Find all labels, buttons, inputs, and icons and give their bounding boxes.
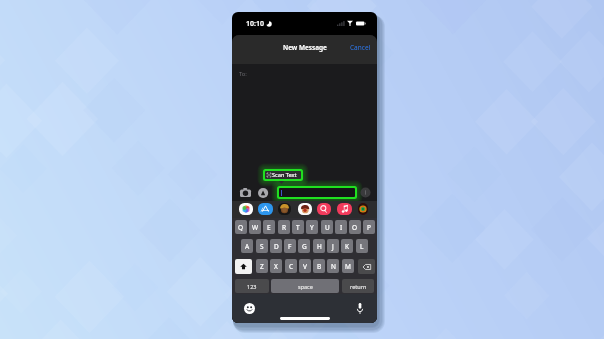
staticText: S <box>260 242 264 251</box>
button[interactable] <box>278 203 291 215</box>
staticText: N <box>331 262 336 271</box>
button[interactable]: Cancel <box>350 43 371 52</box>
button[interactable]: Z <box>256 259 268 273</box>
staticText: L <box>360 242 364 251</box>
button[interactable]: G <box>298 239 310 253</box>
staticText: P <box>367 223 371 232</box>
button[interactable]: C <box>285 259 297 273</box>
staticText: C <box>289 262 294 271</box>
button[interactable] <box>279 188 355 197</box>
button[interactable] <box>337 203 352 215</box>
staticText: To: <box>239 70 247 78</box>
staticText: A <box>245 242 250 251</box>
staticText: 10:10 <box>246 19 264 29</box>
staticText: 123 <box>247 283 257 290</box>
button[interactable]: U <box>321 220 333 234</box>
button[interactable]: O <box>349 220 361 234</box>
button[interactable]: Send <box>360 187 371 198</box>
button[interactable]: 123 <box>235 279 269 293</box>
button[interactable] <box>317 203 331 215</box>
button[interactable]: W <box>249 220 261 234</box>
button[interactable]: I <box>335 220 347 234</box>
staticText: D <box>274 242 279 251</box>
button[interactable]: M <box>342 259 354 273</box>
button[interactable] <box>258 203 273 215</box>
staticText: H <box>317 242 322 251</box>
staticText: Q <box>238 223 244 232</box>
staticText: B <box>317 262 322 271</box>
button[interactable]: J <box>327 239 339 253</box>
button[interactable]: L <box>356 239 368 253</box>
button[interactable] <box>358 203 368 215</box>
staticText: Y <box>310 223 314 232</box>
button[interactable]: Emoji <box>244 303 255 314</box>
button[interactable]: D <box>270 239 282 253</box>
button[interactable]: B <box>313 259 325 273</box>
staticText: O <box>352 223 358 232</box>
button[interactable]: A <box>241 239 253 253</box>
button[interactable]: V <box>299 259 311 273</box>
button[interactable]: K <box>341 239 353 253</box>
staticText: V <box>303 262 307 271</box>
staticText: X <box>274 262 278 271</box>
button[interactable]: Y <box>306 220 318 234</box>
button[interactable] <box>239 203 253 215</box>
staticText: return <box>350 283 367 290</box>
button[interactable]: T <box>292 220 304 234</box>
button[interactable]: Dictation <box>356 303 364 314</box>
button[interactable]: Scan Text <box>265 171 301 179</box>
staticText: M <box>345 262 351 271</box>
button[interactable] <box>298 203 312 215</box>
staticText: T <box>296 223 300 232</box>
button[interactable]: Backspace <box>358 259 375 274</box>
button[interactable]: P <box>363 220 375 234</box>
button[interactable]: App Store <box>258 188 270 198</box>
button[interactable]: Camera <box>240 188 251 197</box>
staticText: K <box>345 242 350 251</box>
staticText: Z <box>260 262 264 271</box>
button[interactable]: H <box>313 239 325 253</box>
staticText: space <box>298 283 313 290</box>
staticText: W <box>252 223 259 232</box>
button[interactable]: space <box>271 279 339 293</box>
staticText: F <box>288 242 292 251</box>
staticText: J <box>332 242 334 251</box>
staticText: New Message <box>283 43 327 52</box>
button[interactable]: X <box>270 259 282 273</box>
staticText: E <box>267 223 271 232</box>
button[interactable]: S <box>256 239 268 253</box>
staticText: U <box>325 223 330 232</box>
button[interactable]: N <box>327 259 339 273</box>
button[interactable]: R <box>278 220 290 234</box>
staticText: G <box>302 242 307 251</box>
button[interactable]: Shift <box>235 259 252 274</box>
button[interactable]: return <box>342 279 374 293</box>
staticText: I <box>340 223 343 232</box>
button[interactable]: Q <box>235 220 247 234</box>
button[interactable]: E <box>263 220 275 234</box>
button[interactable]: F <box>284 239 296 253</box>
staticText: R <box>282 223 287 232</box>
staticText: Scan Text <box>272 171 297 179</box>
staticText: Cancel <box>350 43 371 52</box>
